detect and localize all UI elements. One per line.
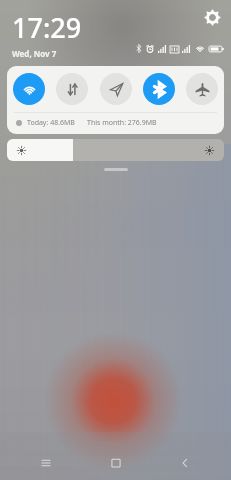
button[interactable]: Mobile data	[56, 73, 88, 105]
button[interactable]: Expand	[104, 168, 128, 171]
button[interactable]: Location	[100, 73, 132, 105]
staticText: 17:29	[12, 9, 82, 46]
button[interactable]: Bluetooth	[143, 73, 175, 105]
button[interactable]: Recents	[23, 446, 69, 480]
button[interactable]: Brightness	[7, 139, 224, 161]
button[interactable]: Airplane mode	[186, 73, 218, 105]
button[interactable]: Home	[93, 446, 139, 480]
button[interactable]: Settings	[201, 6, 223, 28]
staticText: Today: 48.6MB	[27, 118, 75, 128]
button[interactable]: Back	[162, 446, 208, 480]
staticText: This month: 276.9MB	[87, 118, 157, 128]
button[interactable]: Wi-Fi	[13, 73, 45, 105]
staticText: Wed, Nov 7	[12, 48, 57, 59]
